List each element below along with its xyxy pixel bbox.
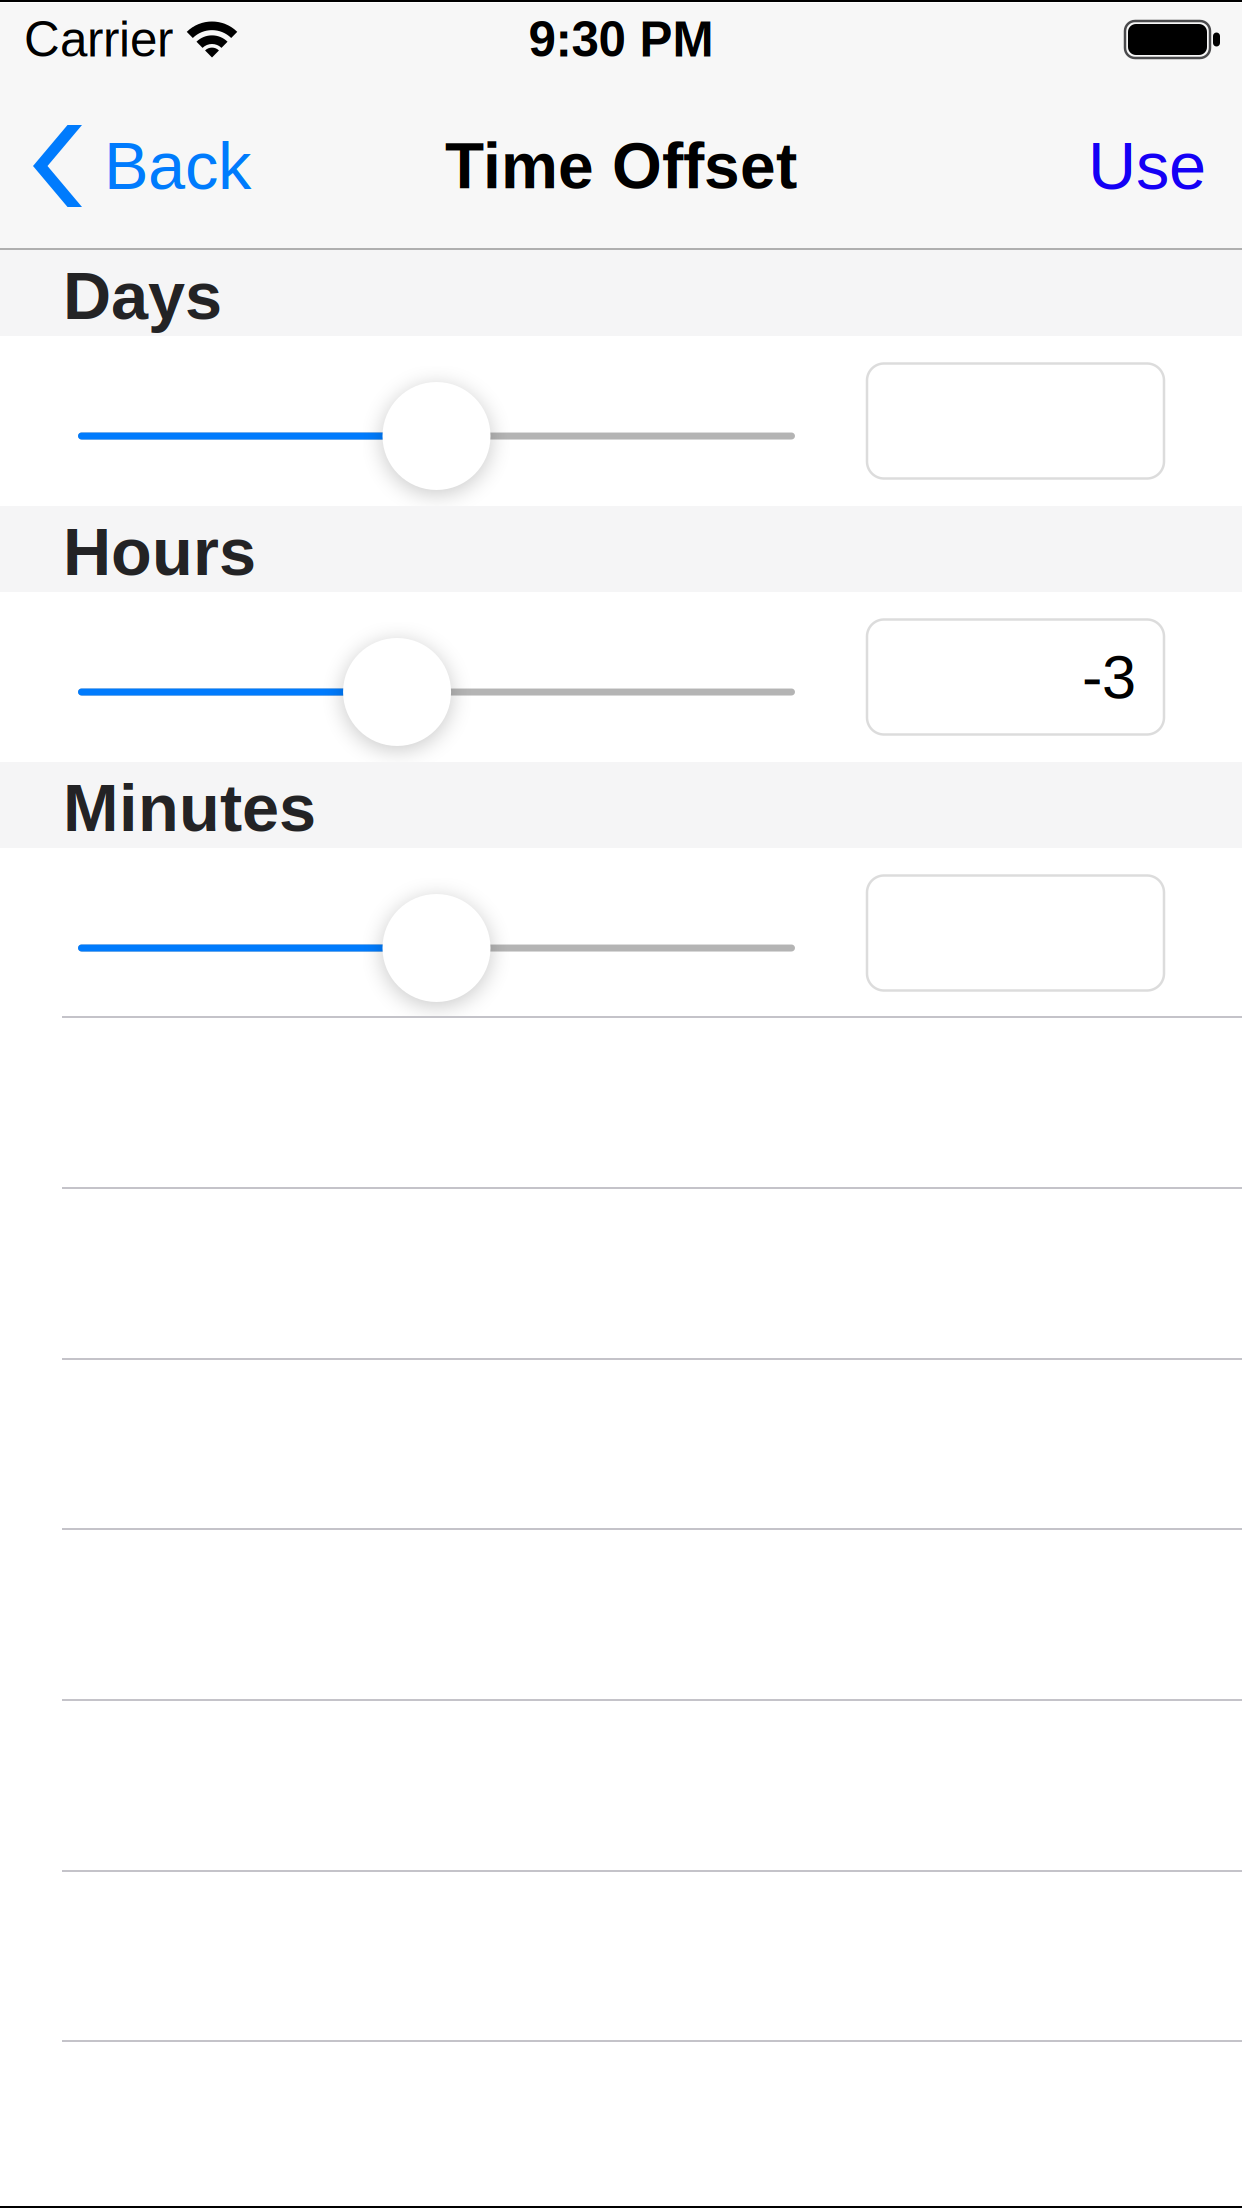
staticText: Back xyxy=(104,129,251,203)
staticText: 9:30 PM xyxy=(528,12,713,67)
staticText: Minutes xyxy=(63,771,316,845)
staticText: Use xyxy=(1088,129,1206,203)
button[interactable]: Back xyxy=(0,76,277,250)
staticText: -3 xyxy=(1082,643,1136,711)
button[interactable]: Use xyxy=(1048,76,1242,250)
staticText: Days xyxy=(63,259,222,333)
staticText: Hours xyxy=(63,515,256,589)
button[interactable]: -3 xyxy=(867,619,1164,734)
staticText: Carrier xyxy=(24,12,173,67)
button[interactable] xyxy=(867,875,1164,990)
button[interactable] xyxy=(867,363,1164,478)
staticText: Time Offset xyxy=(445,130,797,202)
